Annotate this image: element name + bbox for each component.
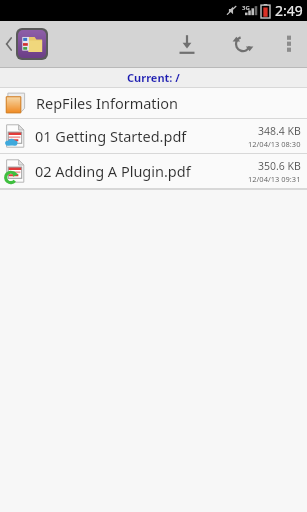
staticText: RepFiles Information (36, 93, 179, 113)
button[interactable]: RepFiles Information (0, 88, 307, 118)
button[interactable]: Download (159, 21, 215, 67)
staticText: 01 Getting Started.pdf (35, 126, 248, 146)
button[interactable]: 02 Adding A Plugin.pdf (0, 154, 307, 188)
button[interactable]: Navigate up (0, 21, 56, 67)
staticText: 2:49 (275, 1, 303, 20)
staticText: 12/04/13 08:30 (248, 139, 301, 149)
staticText: Current: / (127, 70, 180, 85)
button[interactable]: 01 Getting Started.pdf (0, 119, 307, 153)
staticText: 02 Adding A Plugin.pdf (35, 161, 248, 181)
button[interactable]: Refresh (215, 21, 271, 67)
button[interactable]: More options (271, 21, 307, 67)
staticText: 350.6 KB (258, 159, 301, 173)
staticText: 348.4 KB (258, 124, 301, 138)
staticText: 3G (242, 4, 250, 12)
staticText: 12/04/13 09:31 (248, 174, 301, 184)
